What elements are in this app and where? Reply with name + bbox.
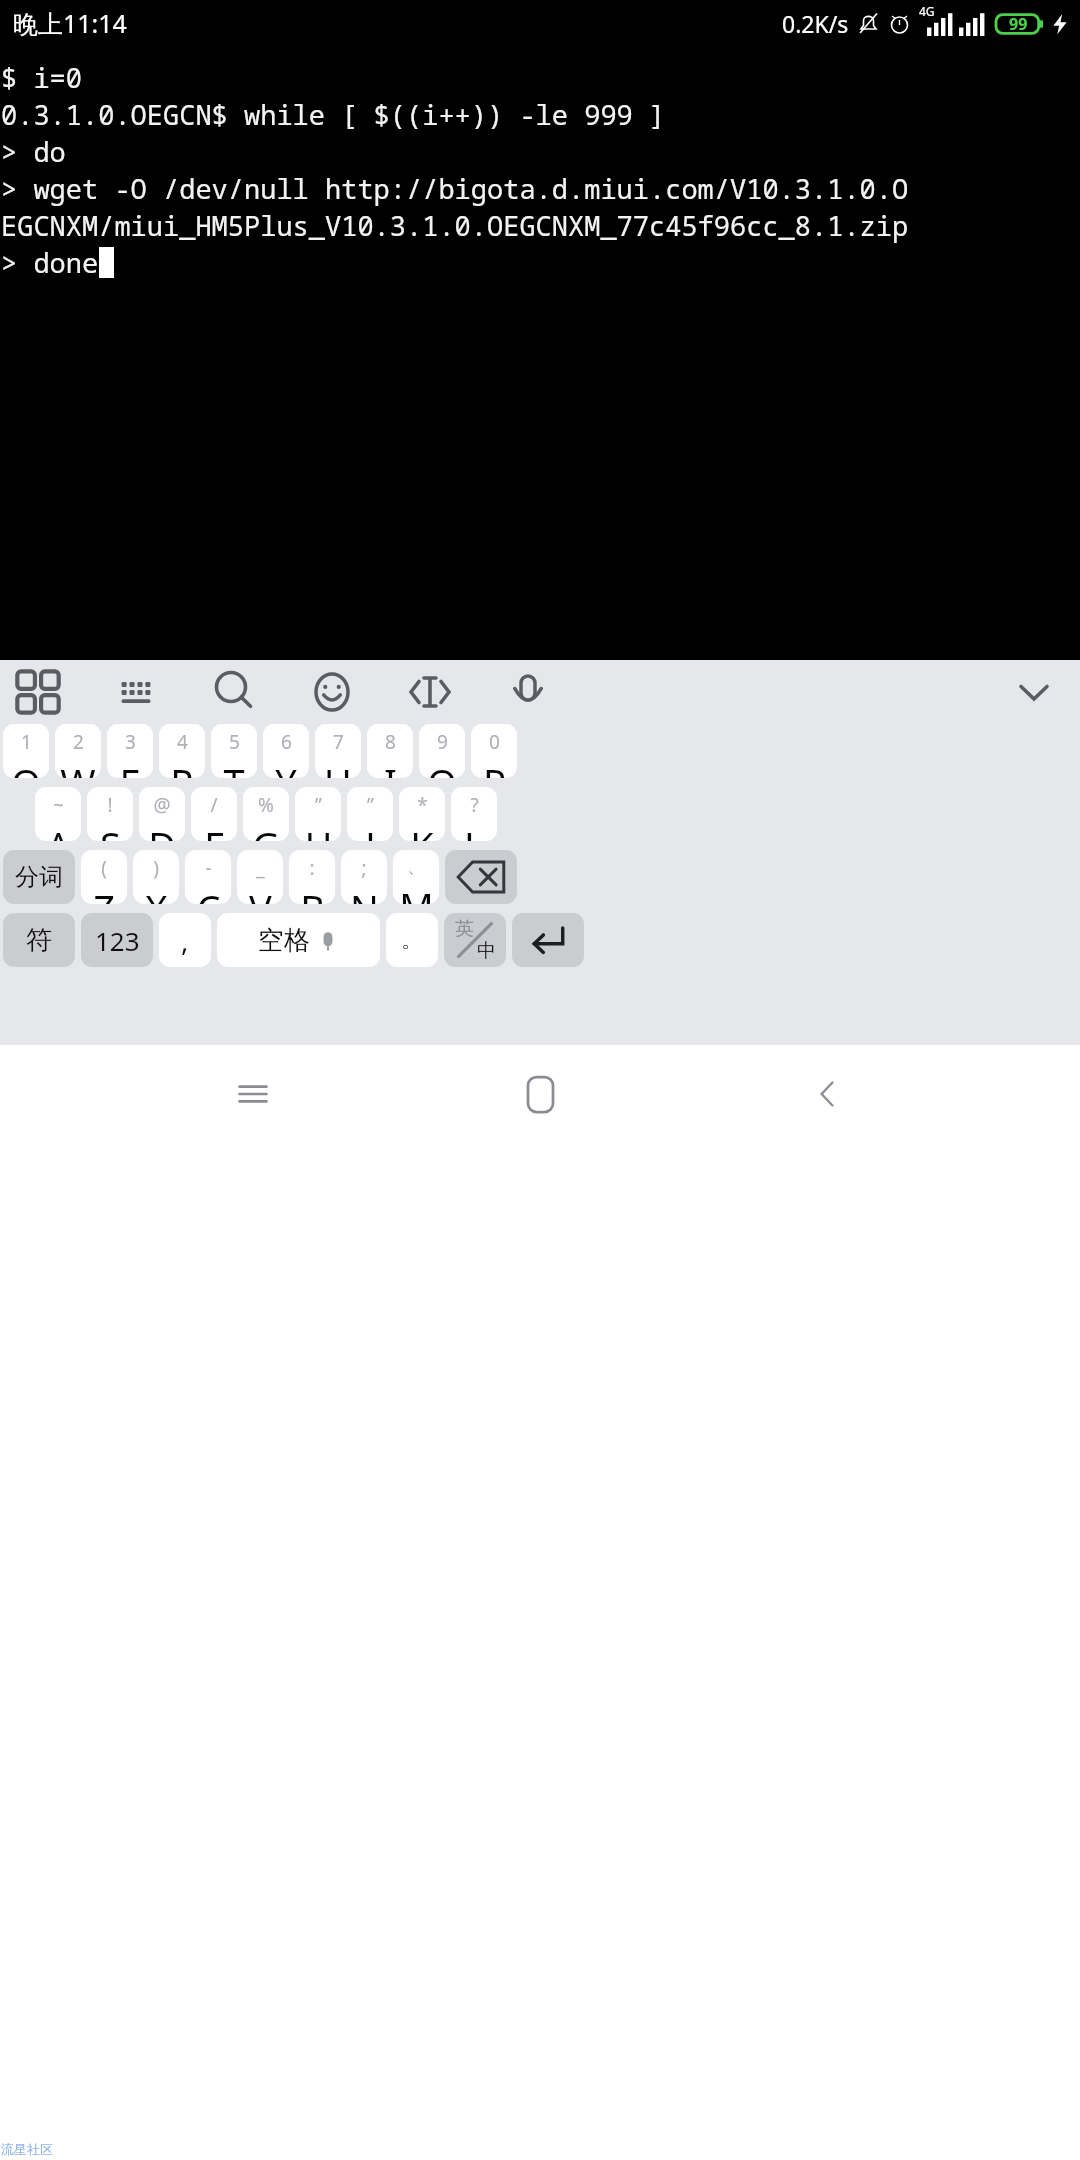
- button[interactable]: Backspace: [445, 850, 517, 904]
- staticText: T: [223, 756, 245, 778]
- button[interactable]: -: [185, 850, 231, 904]
- button[interactable]: ,: [159, 913, 211, 967]
- button[interactable]: _: [237, 850, 283, 904]
- staticText: ”: [367, 792, 374, 818]
- button[interactable]: 空格: [217, 913, 380, 967]
- staticText: 晚上11:14: [13, 6, 127, 40]
- button[interactable]: ~: [35, 787, 81, 841]
- button[interactable]: ?: [451, 787, 497, 841]
- button[interactable]: (: [81, 850, 127, 904]
- staticText: Y: [275, 756, 297, 778]
- staticText: F: [204, 819, 224, 841]
- staticText: 7: [333, 729, 344, 755]
- staticText: G: [252, 819, 280, 841]
- staticText: I: [384, 756, 397, 778]
- button[interactable]: :: [289, 850, 335, 904]
- staticText: 。: [401, 926, 423, 954]
- staticText: K: [410, 819, 434, 841]
- staticText: ~: [53, 792, 64, 818]
- button[interactable]: Voice input: [496, 662, 560, 722]
- staticText: 空格: [258, 924, 310, 957]
- staticText: %: [258, 792, 274, 818]
- staticText: X: [145, 882, 168, 904]
- button[interactable]: 7: [315, 724, 361, 778]
- button[interactable]: *: [399, 787, 445, 841]
- button[interactable]: Enter: [512, 913, 584, 967]
- staticText: 4G: [919, 3, 935, 19]
- staticText: 3: [125, 729, 136, 755]
- staticText: 6: [281, 729, 292, 755]
- button[interactable]: !: [87, 787, 133, 841]
- staticText: 5: [229, 729, 240, 755]
- staticText: E: [119, 756, 141, 778]
- staticText: 流星社区: [1, 2141, 53, 2157]
- button[interactable]: Hide keyboard: [1002, 662, 1066, 722]
- button[interactable]: 1: [3, 724, 49, 778]
- button[interactable]: 6: [263, 724, 309, 778]
- staticText: !: [107, 792, 113, 818]
- button[interactable]: Search: [202, 662, 266, 722]
- button[interactable]: Tools: [6, 662, 70, 722]
- button[interactable]: Keyboard layout: [104, 662, 168, 722]
- button[interactable]: Back: [793, 1059, 863, 1129]
- button[interactable]: 2: [55, 724, 101, 778]
- button[interactable]: 5: [211, 724, 257, 778]
- staticText: H: [304, 819, 333, 841]
- button[interactable]: 0: [471, 724, 517, 778]
- button[interactable]: @: [139, 787, 185, 841]
- staticText: 123: [95, 923, 140, 958]
- button[interactable]: Emoji: [300, 662, 364, 722]
- staticText: > done: [1, 244, 99, 281]
- staticText: M: [399, 880, 434, 904]
- button[interactable]: 9: [419, 724, 465, 778]
- staticText: O: [427, 756, 457, 778]
- button[interactable]: 8: [367, 724, 413, 778]
- button[interactable]: 符: [3, 913, 75, 967]
- button[interactable]: 。: [386, 913, 438, 967]
- staticText: 4: [177, 729, 188, 755]
- staticText: *: [417, 792, 428, 818]
- staticText: 2: [73, 729, 84, 755]
- staticText: J: [365, 819, 376, 841]
- button[interactable]: 123: [81, 913, 153, 967]
- button[interactable]: Switch English Chinese: [444, 913, 506, 967]
- staticText: 1: [21, 729, 32, 755]
- button[interactable]: /: [191, 787, 237, 841]
- staticText: W: [60, 756, 96, 778]
- staticText: 分词: [15, 862, 63, 892]
- staticText: 99: [1009, 13, 1028, 35]
- staticText: ,: [181, 921, 189, 959]
- staticText: /: [210, 792, 218, 818]
- staticText: :: [309, 855, 315, 881]
- staticText: 中: [477, 939, 496, 963]
- button[interactable]: 4: [159, 724, 205, 778]
- button[interactable]: ): [133, 850, 179, 904]
- button[interactable]: ”: [347, 787, 393, 841]
- button[interactable]: %: [243, 787, 289, 841]
- staticText: (: [101, 855, 107, 881]
- button[interactable]: 分词: [3, 850, 75, 904]
- staticText: ?: [470, 792, 479, 818]
- button[interactable]: 3: [107, 724, 153, 778]
- staticText: N: [350, 882, 379, 904]
- staticText: 0.2K/s: [782, 8, 849, 39]
- staticText: _: [256, 855, 265, 881]
- staticText: C: [196, 882, 221, 904]
- staticText: @: [153, 792, 171, 818]
- staticText: > wget -O /dev/null http://bigota.d.miui…: [1, 170, 909, 207]
- staticText: > do: [1, 133, 66, 170]
- staticText: -: [205, 855, 212, 881]
- staticText: 8: [385, 729, 396, 755]
- staticText: ): [153, 855, 159, 881]
- button[interactable]: ;: [341, 850, 387, 904]
- staticText: 0.3.1.0.OEGCN$ while [ $((i++)) -le 999 …: [1, 96, 666, 133]
- staticText: ;: [361, 855, 367, 881]
- button[interactable]: Move cursor: [398, 662, 462, 722]
- button[interactable]: 、: [393, 850, 439, 904]
- button[interactable]: Home: [505, 1059, 575, 1129]
- staticText: S: [100, 819, 121, 841]
- staticText: Z: [93, 882, 115, 904]
- staticText: Q: [11, 756, 41, 778]
- button[interactable]: Recent apps: [218, 1059, 288, 1129]
- button[interactable]: ”: [295, 787, 341, 841]
